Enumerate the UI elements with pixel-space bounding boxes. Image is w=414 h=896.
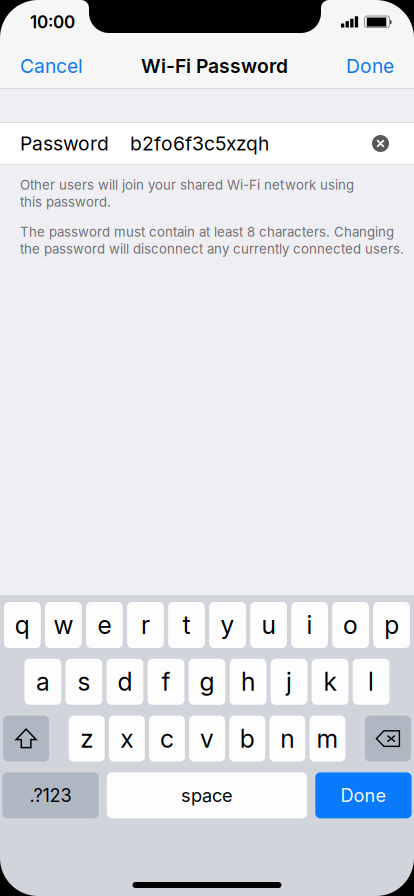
staticText: h	[241, 667, 255, 697]
staticText: o	[343, 610, 358, 640]
button[interactable]: d	[107, 659, 143, 705]
staticText: e	[97, 610, 111, 640]
staticText: space	[181, 784, 233, 806]
staticText: z	[80, 723, 93, 754]
button[interactable]: Done	[315, 772, 412, 818]
button[interactable]: Cancel	[0, 44, 93, 88]
button[interactable]: y	[209, 602, 246, 648]
staticText: s	[77, 667, 90, 697]
staticText: m	[316, 723, 338, 754]
staticText: Cancel	[20, 54, 83, 78]
button[interactable]: c	[149, 716, 185, 762]
staticText: x	[120, 723, 133, 754]
button[interactable]: l	[353, 659, 389, 705]
staticText: Other users will join your shared Wi-Fi …	[20, 177, 354, 193]
button[interactable]: g	[189, 659, 225, 705]
staticText: Done	[346, 54, 394, 78]
button[interactable]: Clear text	[372, 135, 389, 152]
button[interactable]: v	[189, 716, 225, 762]
staticText: t	[182, 610, 190, 640]
staticText: 10:00	[30, 12, 75, 32]
button[interactable]: n	[269, 716, 305, 762]
staticText: .?123	[30, 784, 72, 806]
button[interactable]: r	[127, 602, 164, 648]
button[interactable]: z	[69, 716, 105, 762]
staticText: The password must contain at least 8 cha…	[20, 224, 394, 240]
button[interactable]: h	[230, 659, 266, 705]
staticText: c	[160, 723, 174, 754]
button[interactable]: f	[148, 659, 184, 705]
button[interactable]: Delete	[365, 716, 411, 762]
button[interactable]: x	[109, 716, 145, 762]
staticText: k	[324, 667, 337, 697]
button[interactable]: e	[86, 602, 123, 648]
staticText: n	[280, 723, 294, 754]
button[interactable]: space	[107, 772, 307, 818]
staticText: the password will disconnect any current…	[20, 241, 404, 257]
button[interactable]: w	[45, 602, 82, 648]
button[interactable]: j	[271, 659, 307, 705]
staticText: Wi-Fi Password	[141, 54, 288, 78]
staticText: j	[286, 667, 292, 697]
staticText: y	[220, 610, 234, 640]
staticText: f	[161, 667, 170, 697]
staticText: q	[15, 610, 30, 640]
button[interactable]: i	[291, 602, 328, 648]
staticText: l	[368, 667, 374, 697]
staticText: this password.	[20, 194, 111, 210]
button[interactable]: Shift	[3, 716, 49, 762]
staticText: g	[199, 667, 214, 697]
staticText: u	[261, 610, 275, 640]
button[interactable]: b	[229, 716, 265, 762]
button[interactable]: p	[373, 602, 410, 648]
button[interactable]: o	[332, 602, 369, 648]
staticText: Done	[340, 784, 386, 806]
staticText: a	[36, 667, 50, 697]
staticText: b	[240, 723, 255, 754]
staticText: Password	[20, 132, 109, 155]
button[interactable]: t	[168, 602, 205, 648]
staticText: r	[141, 610, 150, 640]
staticText: b2fo6f3c5xzqh	[130, 132, 269, 155]
button[interactable]: .?123	[2, 772, 99, 818]
button[interactable]: u	[250, 602, 287, 648]
staticText: i	[307, 610, 313, 640]
staticText: p	[384, 610, 399, 640]
staticText: w	[53, 610, 73, 640]
button[interactable]: q	[4, 602, 41, 648]
button[interactable]: m	[310, 716, 345, 762]
button[interactable]: a	[24, 659, 61, 705]
button[interactable]: s	[65, 659, 102, 705]
button[interactable]: k	[312, 659, 348, 705]
staticText: v	[200, 723, 214, 754]
staticText: d	[117, 667, 132, 697]
button[interactable]: Done	[336, 44, 414, 88]
